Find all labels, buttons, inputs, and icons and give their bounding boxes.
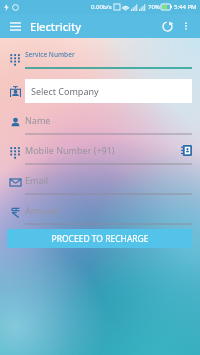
button[interactable]: PROCEED TO RECHARGE: [7, 229, 192, 248]
button[interactable]: Pick contact: [180, 144, 192, 156]
button[interactable]: Amount: [5, 199, 192, 225]
staticText: PROCEED TO RECHARGE: [51, 233, 149, 245]
staticText: 70%: [148, 3, 160, 11]
staticText: 5:44 PM: [174, 3, 197, 11]
staticText: Name: [25, 114, 51, 126]
button[interactable]: More options: [178, 18, 194, 34]
staticText: Amount: [25, 204, 59, 216]
staticText: 0.00b/s: [91, 3, 112, 11]
staticText: Email: [25, 174, 49, 186]
button[interactable]: Email: [5, 169, 192, 195]
staticText: Mobile Number (+91): [25, 144, 115, 156]
button[interactable]: Service Number: [5, 44, 192, 74]
button[interactable]: Mobile Number (+91): [5, 139, 192, 165]
staticText: Select Company: [31, 85, 99, 97]
staticText: Service Number: [25, 50, 75, 59]
button[interactable]: Select Company: [5, 78, 192, 104]
button[interactable]: Name: [5, 109, 192, 135]
button[interactable]: Refresh: [158, 17, 176, 35]
staticText: Electricity: [30, 19, 82, 34]
button[interactable]: Open navigation menu: [6, 17, 24, 35]
